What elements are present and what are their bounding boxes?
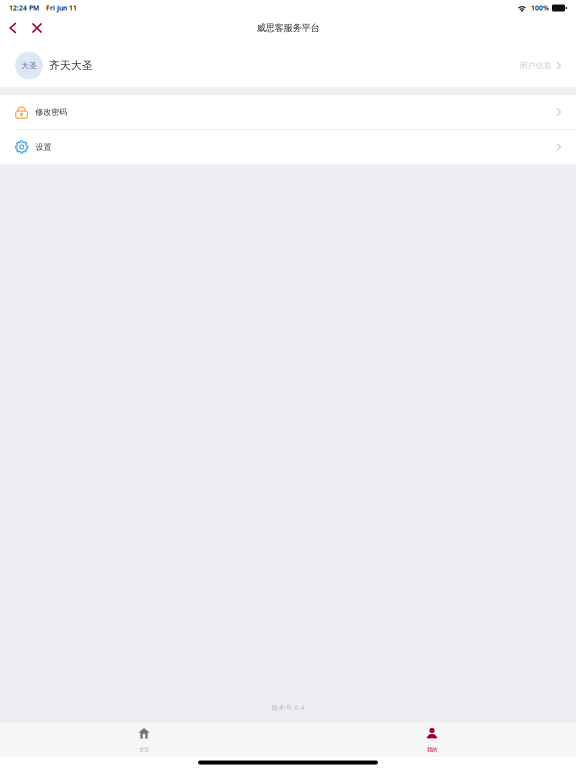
button[interactable]: 修改密码 (0, 95, 576, 129)
button[interactable]: 主页 (0, 723, 288, 757)
staticText: Fri Jun 11 (46, 4, 77, 12)
staticText: 100% (531, 4, 549, 12)
staticText: 齐天大圣 (49, 59, 93, 72)
staticText: 大圣 (21, 61, 37, 70)
staticText: 我的 (427, 746, 437, 753)
staticText: 威思客服务平台 (256, 22, 319, 34)
staticText: 设置 (35, 142, 51, 152)
staticText: 12:24 PM (9, 4, 39, 12)
button[interactable]: 大圣 (0, 44, 576, 87)
staticText: 用户信息 (519, 61, 551, 70)
button[interactable]: Close (23, 16, 51, 40)
button[interactable]: 我的 (288, 723, 576, 757)
button[interactable]: Back (3, 16, 23, 40)
staticText: 修改密码 (35, 107, 67, 117)
button[interactable]: 设置 (0, 130, 576, 164)
staticText: 主页 (139, 746, 149, 753)
staticText: 版本号:6.4 (271, 703, 304, 712)
